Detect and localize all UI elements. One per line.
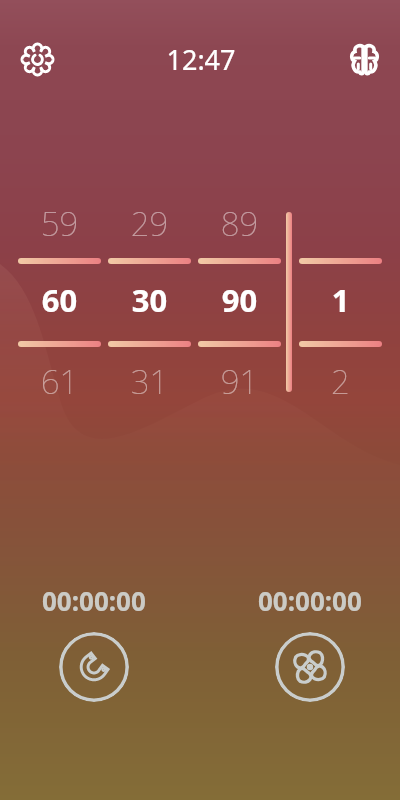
button[interactable]: 1 [299,205,382,397]
button[interactable]: 89 [198,205,281,397]
staticText: 31 [108,359,191,404]
staticText: 29 [108,201,191,246]
staticText: 59 [18,201,101,246]
staticText: 00:00:00 [258,583,362,618]
staticText: 60 [18,279,101,321]
button[interactable]: Fan timer [275,632,345,702]
button[interactable]: 29 [108,205,191,397]
staticText: 12:47 [1,41,400,78]
staticText: 61 [18,359,101,404]
staticText: 90 [198,279,281,321]
staticText: 91 [198,359,281,404]
staticText: 2 [299,359,382,404]
button[interactable]: 59 [18,205,101,397]
staticText: 1 [299,279,382,321]
button[interactable]: Focus mode [341,36,387,82]
staticText: 00:00:00 [42,583,146,618]
button[interactable]: Settings [13,35,61,83]
button[interactable]: Magnet timer [59,632,129,702]
staticText: 30 [108,279,191,321]
staticText: 89 [198,201,281,246]
